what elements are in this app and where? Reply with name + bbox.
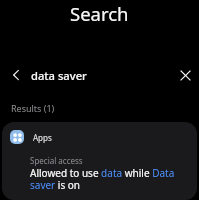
button[interactable]: Apps [2, 122, 197, 200]
staticText: Special access [30, 155, 83, 166]
staticText: Results (1) [11, 102, 55, 114]
staticText: data saver [31, 68, 87, 83]
button[interactable]: Back [7, 66, 25, 84]
button[interactable]: Clear search [175, 65, 195, 85]
staticText: Apps [33, 132, 52, 143]
button[interactable]: Back [0, 52, 199, 96]
staticText: Search [70, 1, 129, 26]
staticText: Allowed to use data while Data saver is … [30, 166, 187, 192]
